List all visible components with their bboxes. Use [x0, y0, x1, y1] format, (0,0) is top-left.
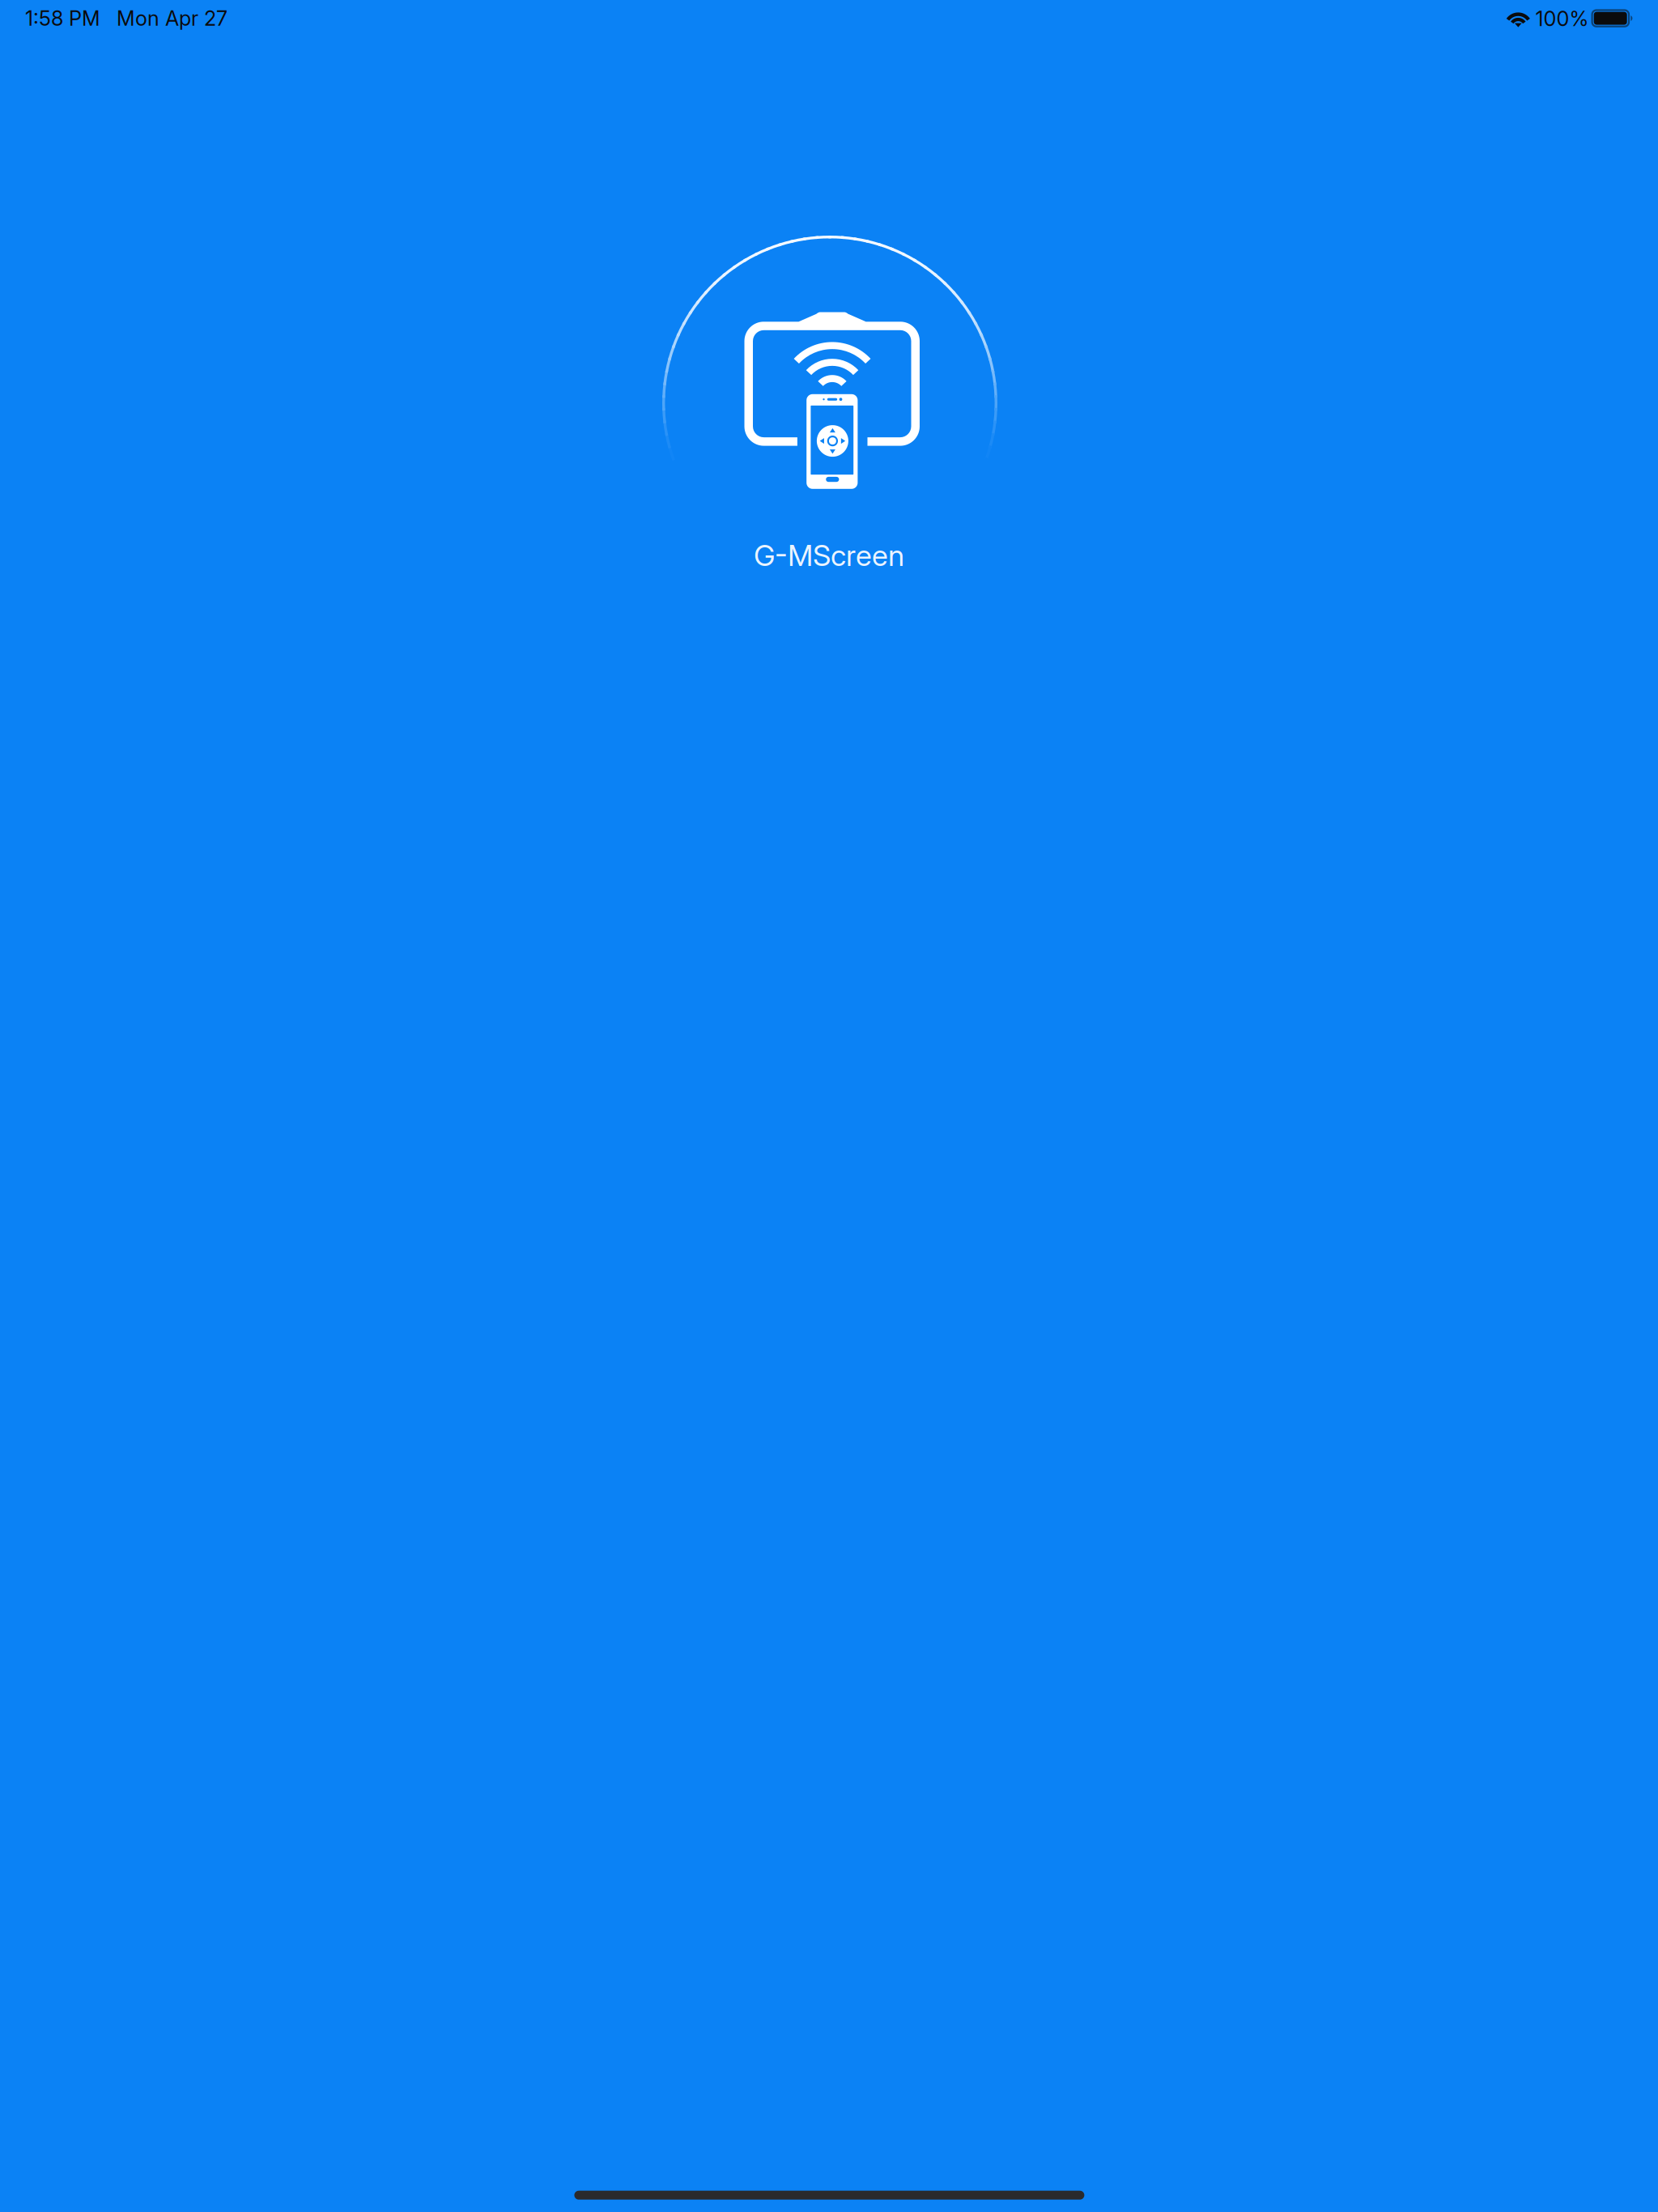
staticText: 1:58 PM [25, 6, 100, 31]
staticText: Mon Apr 27 [117, 6, 227, 31]
staticText: G-MScreen [754, 538, 904, 573]
staticText: 100% [1535, 6, 1589, 31]
